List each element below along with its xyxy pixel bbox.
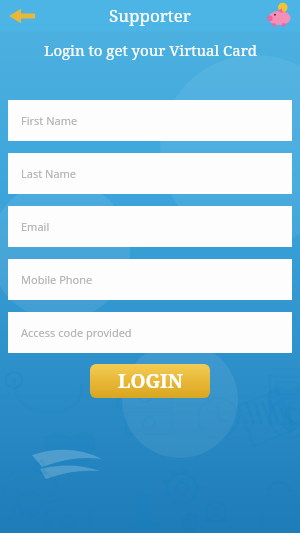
button[interactable]: Mobile Phone [8,259,292,300]
staticText: Mobile Phone [21,272,93,287]
staticText: LOGIN [118,368,183,394]
button[interactable]: Back [0,0,44,31]
staticText: Supporter [109,4,191,27]
button[interactable]: Last Name [8,153,292,194]
button[interactable]: LOGIN [90,364,210,398]
button[interactable]: Email [8,206,292,247]
button[interactable]: Piggy bank [264,0,296,31]
staticText: Login to get your Virtual Card [44,40,257,60]
button[interactable]: Access code provided [8,312,292,353]
staticText: First Name [21,113,78,128]
button[interactable]: First Name [8,100,292,141]
staticText: Access code provided [21,325,132,340]
staticText: Email [21,219,50,234]
staticText: Last Name [21,166,77,181]
